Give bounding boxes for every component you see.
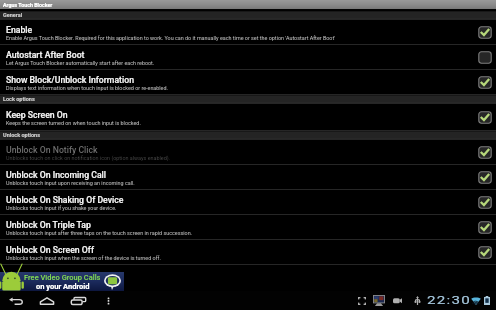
button[interactable]: Checked: [478, 196, 492, 209]
button[interactable]: Recent apps: [67, 291, 90, 310]
staticText: Enable: [6, 25, 33, 35]
staticText: on your Android: [36, 282, 90, 291]
button[interactable]: Checked: [478, 26, 492, 39]
button[interactable]: Unchecked: [478, 51, 492, 64]
button[interactable]: Unblock On Triple Tap: [0, 215, 496, 240]
staticText: Enable Argus Touch Blocker. Required for…: [6, 35, 336, 41]
button[interactable]: Unblock On Notify Click: [0, 140, 496, 165]
button[interactable]: Checked: [478, 111, 492, 124]
staticText: Unblock On Notify Click: [6, 145, 98, 155]
staticText: Unblocks touch input when the screen of …: [6, 255, 161, 261]
staticText: Displays text information when touch inp…: [6, 85, 168, 91]
staticText: Keeps the screen turned on when touch in…: [6, 120, 141, 126]
staticText: Keep Screen On: [6, 110, 68, 120]
staticText: Lock options: [3, 96, 35, 102]
staticText: Unblocks touch input if you shake your d…: [6, 205, 117, 211]
button[interactable]: Checked: [478, 246, 492, 259]
button[interactable]: Advertisement banner: [0, 272, 124, 291]
staticText: Autostart After Boot: [6, 50, 85, 60]
button[interactable]: Checked: [478, 221, 492, 234]
button[interactable]: Autostart After Boot: [0, 45, 496, 70]
button[interactable]: Show Block/Unblock Information: [0, 70, 496, 95]
button[interactable]: Unblock On Shaking Of Device: [0, 190, 496, 215]
button[interactable]: Home: [36, 291, 58, 310]
staticText: Argus Touch Blocker: [3, 2, 53, 8]
button[interactable]: Keep Screen On: [0, 104, 496, 131]
staticText: Unblocks touch on click on notification …: [6, 155, 170, 161]
button[interactable]: Checked: [478, 171, 492, 184]
staticText: Unblock On Shaking Of Device: [6, 195, 124, 205]
button[interactable]: Checked: [478, 76, 492, 89]
staticText: Free Video Group Calls: [24, 273, 101, 282]
button[interactable]: Checked: [478, 146, 492, 159]
button[interactable]: Menu: [102, 291, 115, 310]
button[interactable]: Unblock On Incoming Call: [0, 165, 496, 190]
button[interactable]: Enable: [0, 20, 496, 45]
staticText: Unblocks touch input after three taps on…: [6, 230, 193, 236]
staticText: Unblock On Triple Tap: [6, 220, 91, 230]
staticText: Unblock On Incoming Call: [6, 170, 106, 180]
staticText: Unlock options: [3, 132, 40, 138]
staticText: General: [3, 12, 23, 18]
staticText: Show Block/Unblock Information: [6, 75, 134, 85]
button[interactable]: Back: [5, 291, 27, 310]
staticText: Unblock On Screen Off: [6, 245, 94, 255]
button[interactable]: Unblock On Screen Off: [0, 240, 496, 265]
staticText: Let Argus Touch Blocker automatically st…: [6, 60, 155, 66]
staticText: 22:30: [427, 294, 471, 307]
staticText: Unblocks touch input upon receiving an i…: [6, 180, 135, 186]
